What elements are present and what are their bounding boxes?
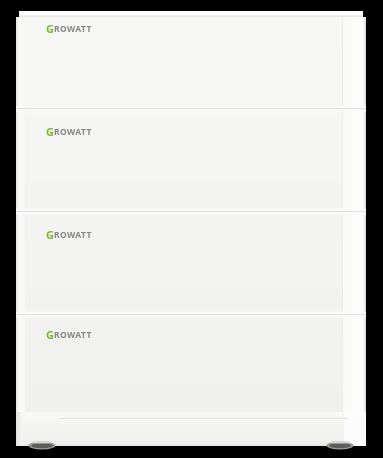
staticText: ROWATT [54, 126, 92, 138]
button[interactable]: Growatt logo [46, 124, 92, 139]
staticText: G [46, 124, 54, 139]
staticText: ROWATT [54, 229, 92, 241]
staticText: G [46, 327, 54, 342]
staticText: G [46, 227, 54, 242]
button[interactable]: Growatt logo [46, 227, 92, 242]
button[interactable]: Growatt stacked battery cabinet [0, 0, 383, 458]
button[interactable]: Growatt logo [46, 21, 92, 36]
staticText: G [46, 21, 54, 36]
staticText: ROWATT [54, 23, 92, 35]
staticText: ROWATT [54, 329, 92, 341]
button[interactable]: Growatt logo [46, 327, 92, 342]
